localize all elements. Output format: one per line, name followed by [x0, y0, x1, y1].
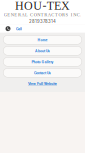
staticText: Contact Us	[34, 70, 51, 75]
button[interactable]: Contact Us	[3, 68, 82, 77]
button[interactable]: Home	[3, 35, 82, 44]
button[interactable]: View Full Website	[28, 80, 57, 87]
button[interactable]: Photo Gallery	[3, 57, 82, 66]
staticText: View Full Website	[28, 81, 57, 86]
staticText: GENERAL CONTRACTORS INC.	[4, 12, 81, 17]
staticText: Home	[37, 37, 47, 42]
staticText: Call	[16, 26, 22, 31]
button[interactable]: About Us	[3, 46, 82, 55]
staticText: HOU-TEX	[15, 0, 70, 12]
staticText: Photo Gallery	[31, 59, 53, 64]
staticText: 2819378314	[29, 19, 56, 24]
staticText: About Us	[35, 48, 50, 53]
button[interactable]: Call	[0, 25, 22, 33]
